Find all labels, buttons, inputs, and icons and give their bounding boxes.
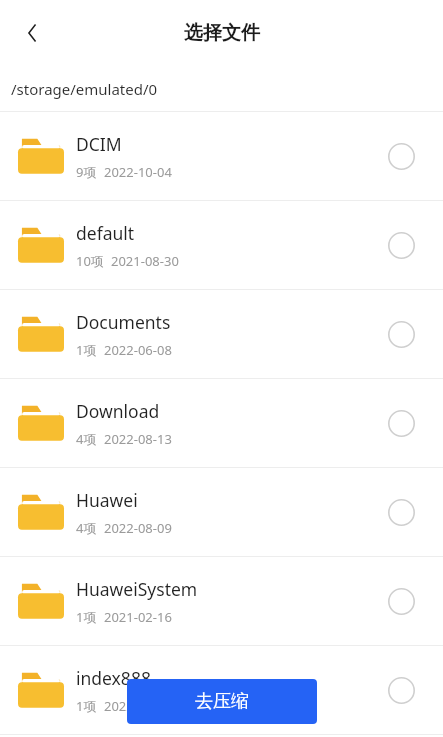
staticText: 9项 <box>76 163 97 181</box>
staticText: DCIM <box>76 132 122 156</box>
staticText: Download <box>76 399 160 423</box>
staticText: 去压缩 <box>195 690 249 713</box>
staticText: 2021-08-30 <box>111 252 179 270</box>
staticText: 2022-10-04 <box>104 163 172 181</box>
staticText: 10项 <box>76 252 104 270</box>
button[interactable]: DCIM <box>0 112 443 200</box>
button[interactable]: Select index888 <box>375 664 427 716</box>
staticText: 1项 <box>76 608 97 626</box>
button[interactable]: Select Download <box>375 397 427 449</box>
staticText: default <box>76 221 135 245</box>
button[interactable]: Download <box>0 379 443 467</box>
button[interactable]: HuaweiSystem <box>0 557 443 645</box>
staticText: 2021-02-16 <box>104 608 172 626</box>
staticText: Documents <box>76 310 171 334</box>
button[interactable]: Select Huawei <box>375 486 427 538</box>
staticText: 4项 <box>76 430 97 448</box>
staticText: 1项 <box>76 697 97 715</box>
staticText: 4项 <box>76 519 97 537</box>
button[interactable]: Huawei <box>0 468 443 556</box>
button[interactable]: default <box>0 201 443 289</box>
staticText: index888 <box>76 666 151 690</box>
button[interactable]: Select HuaweiSystem <box>375 575 427 627</box>
button[interactable]: Back <box>12 13 52 53</box>
staticText: 选择文件 <box>184 21 260 45</box>
staticText: 1项 <box>76 341 97 359</box>
staticText: /storage/emulated/0 <box>11 79 158 99</box>
button[interactable]: /storage/emulated/0 <box>0 66 443 111</box>
button[interactable]: index888 <box>0 646 443 734</box>
button[interactable]: 去压缩 <box>127 679 317 724</box>
button[interactable]: Select default <box>375 219 427 271</box>
staticText: 2022-06-08 <box>104 341 172 359</box>
button[interactable]: Documents <box>0 290 443 378</box>
staticText: 2022-05-11 <box>104 697 172 715</box>
staticText: Huawei <box>76 488 138 512</box>
staticText: 2022-08-13 <box>104 430 172 448</box>
button[interactable]: Select DCIM <box>375 130 427 182</box>
staticText: 2022-08-09 <box>104 519 172 537</box>
staticText: HuaweiSystem <box>76 577 198 601</box>
button[interactable]: Select Documents <box>375 308 427 360</box>
